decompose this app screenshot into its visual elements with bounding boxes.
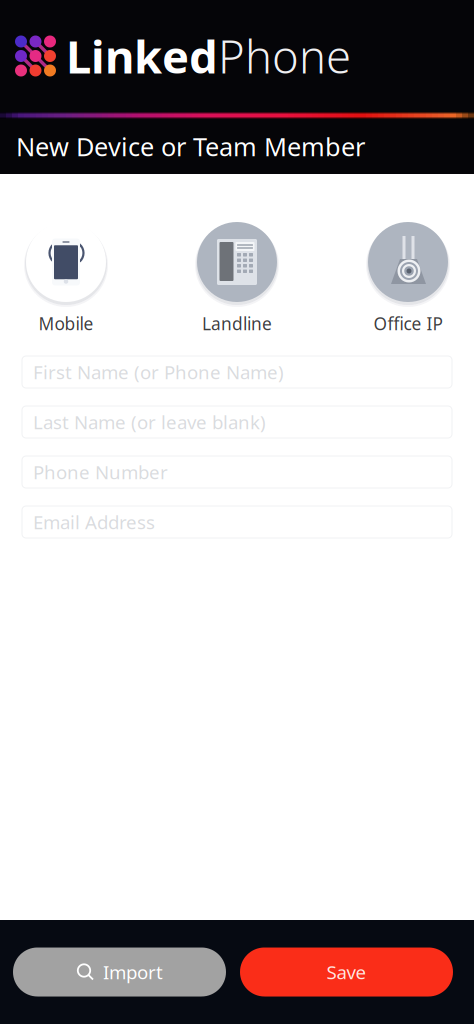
staticText: Last Name (or leave blank) [33,410,266,434]
button[interactable]: Mobile [11,219,121,335]
staticText: Mobile [38,312,93,335]
staticText: Linked [66,26,218,86]
button[interactable]: Landline [182,219,292,335]
button[interactable]: Email Address [22,506,452,538]
button[interactable]: First Name (or Phone Name) [22,356,452,388]
staticText: Phone Number [33,460,168,484]
button[interactable]: Import [13,947,226,996]
button[interactable]: Phone Number [22,456,452,488]
staticText: Save [326,960,366,984]
staticText: Phone [218,26,351,86]
button[interactable]: Last Name (or leave blank) [22,406,452,438]
staticText: Landline [202,312,272,335]
staticText: Office IP [373,312,442,335]
staticText: Email Address [33,510,155,534]
staticText: Import [103,960,163,984]
staticText: New Device or Team Member [16,130,365,163]
button[interactable]: Office IP [353,219,463,335]
staticText: First Name (or Phone Name) [33,360,284,384]
button[interactable]: Save [240,947,453,996]
